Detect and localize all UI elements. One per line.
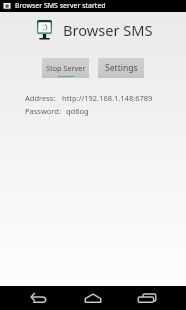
staticText: http://192.168.1.148:6789	[62, 93, 153, 103]
staticText: Browser SMS	[63, 20, 153, 40]
button[interactable]: Stop Server	[42, 58, 89, 78]
staticText: Settings	[105, 62, 138, 74]
staticText: Browser SMS server started	[15, 1, 106, 11]
button[interactable]: Recents	[120, 286, 174, 310]
button[interactable]: Home	[66, 286, 120, 310]
staticText: Stop Server	[46, 63, 86, 73]
button[interactable]: Back	[11, 286, 65, 310]
staticText: Password:	[25, 106, 61, 116]
button[interactable]: Settings	[98, 58, 144, 78]
staticText: Address:	[25, 93, 56, 103]
staticText: qd6og	[66, 106, 89, 116]
